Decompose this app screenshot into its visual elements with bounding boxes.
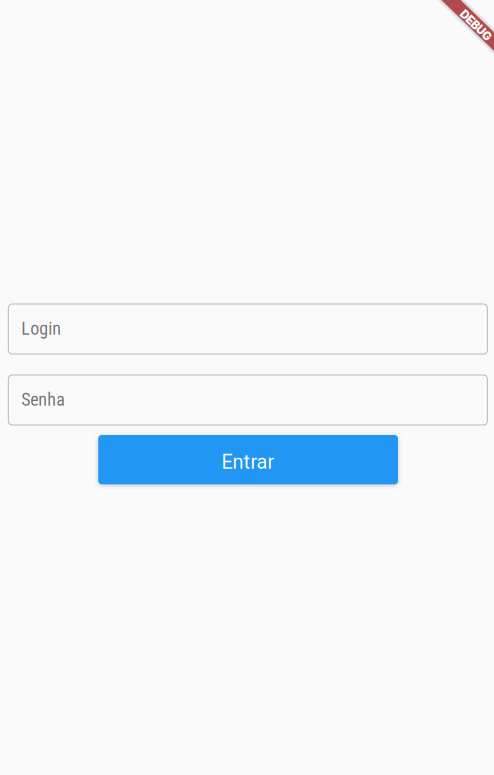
staticText: Login (21, 318, 61, 339)
button[interactable]: Entrar (97, 435, 397, 484)
button[interactable]: Login (8, 304, 487, 354)
staticText: Senha (21, 389, 65, 410)
staticText: DEBUG (459, 16, 494, 29)
button[interactable]: Senha (8, 375, 487, 425)
staticText: Entrar (222, 450, 275, 474)
